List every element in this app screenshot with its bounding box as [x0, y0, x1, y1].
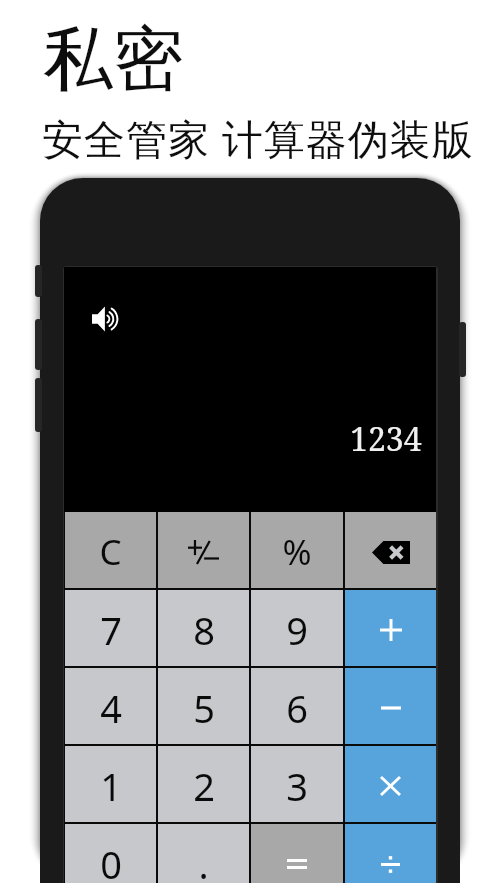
staticText: 0 [100, 838, 122, 883]
staticText: % [282, 528, 312, 576]
button[interactable]: Plus [345, 590, 436, 666]
other: Multiply [381, 777, 400, 795]
staticText: 5 [193, 682, 215, 734]
staticText: 7 [100, 604, 122, 656]
button[interactable]: 7 [65, 590, 156, 666]
button[interactable]: 9 [251, 590, 343, 666]
button[interactable]: . [158, 824, 249, 883]
other: Plus [380, 619, 402, 641]
other: Equals [287, 859, 307, 869]
staticText: 1 [100, 760, 122, 812]
staticText: 3 [286, 760, 308, 812]
button[interactable]: Multiply [345, 746, 436, 822]
staticText: 安全管家 计算器伪装版 [42, 110, 474, 166]
button[interactable]: C [65, 512, 156, 588]
button[interactable]: Backspace [345, 512, 436, 588]
staticText: 6 [286, 682, 308, 734]
staticText: 4 [100, 682, 122, 734]
staticText: . [198, 838, 209, 883]
button[interactable]: 0 [65, 824, 156, 883]
other: Volume [92, 306, 120, 332]
other: Plus minus [188, 540, 219, 564]
button[interactable]: % [251, 512, 343, 588]
staticText: 9 [286, 604, 308, 656]
other: Minus [381, 706, 401, 710]
button[interactable]: Equals [251, 824, 343, 883]
button[interactable]: 5 [158, 668, 249, 744]
staticText: 私密 [43, 16, 183, 104]
staticText: C [99, 528, 122, 576]
button[interactable]: 3 [251, 746, 343, 822]
button[interactable]: 6 [251, 668, 343, 744]
button[interactable]: 1 [65, 746, 156, 822]
button[interactable]: Plus minus [158, 512, 249, 588]
staticText: 2 [193, 760, 215, 812]
other: Backspace [372, 541, 410, 564]
button[interactable]: Minus [345, 668, 436, 744]
staticText: 1234 [350, 417, 422, 461]
button[interactable]: 2 [158, 746, 249, 822]
button[interactable]: Divide [345, 824, 436, 883]
button[interactable]: 8 [158, 590, 249, 666]
staticText: 8 [193, 604, 215, 656]
other: Divide [381, 855, 400, 874]
button[interactable]: 4 [65, 668, 156, 744]
